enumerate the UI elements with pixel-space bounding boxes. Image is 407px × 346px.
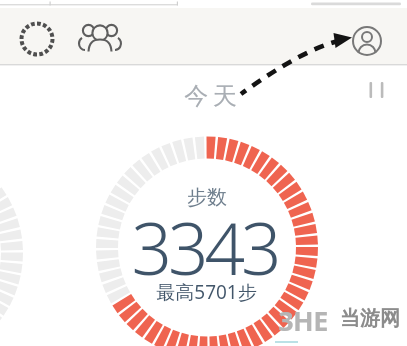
staticText: 今天	[182, 81, 239, 111]
button[interactable]: 3343	[101, 199, 307, 296]
button[interactable]	[78, 16, 122, 60]
button[interactable]	[17, 19, 57, 59]
staticText: 3343	[131, 199, 278, 296]
staticText: 最高5701步	[156, 279, 257, 305]
staticText: 3HE	[278, 302, 328, 339]
button[interactable]	[349, 23, 385, 59]
staticText: 步数	[187, 185, 227, 210]
button[interactable]: 今天	[130, 81, 290, 111]
button[interactable]	[360, 74, 390, 104]
staticText: 当游网	[340, 306, 400, 331]
